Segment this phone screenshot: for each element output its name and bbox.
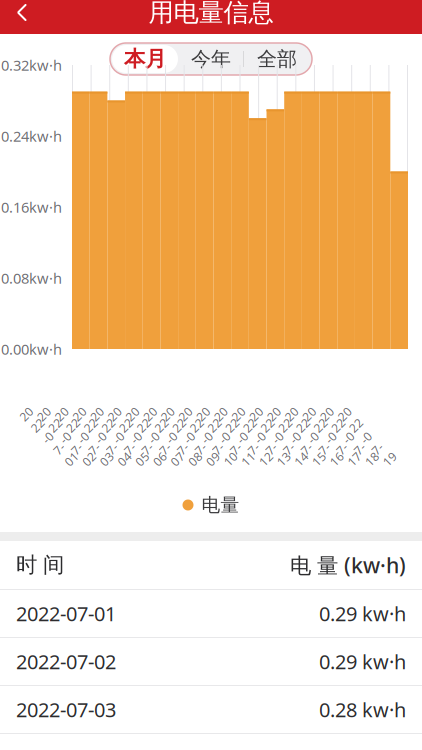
button[interactable]: 返回 xyxy=(0,0,44,34)
staticText: 2022-07-15 xyxy=(289,397,303,476)
staticText: 2022-07-01 xyxy=(42,397,56,476)
staticText: 2022-07-01 xyxy=(16,600,116,627)
staticText: 2022-07-17 xyxy=(325,397,339,476)
staticText: 2022-07-19 xyxy=(360,397,374,476)
staticText: 2022-07-18 xyxy=(342,397,356,476)
staticText: 0.08kw·h xyxy=(1,268,62,288)
staticText: 0.24kw·h xyxy=(1,126,62,146)
staticText: 2022-07-12 xyxy=(236,397,250,476)
staticText: 用电量信息 xyxy=(148,0,273,28)
staticText: 2022-07-07 xyxy=(148,397,162,476)
staticText: 全部 xyxy=(257,47,297,71)
staticText: 本月 xyxy=(124,46,166,72)
staticText: 2022-07-13 xyxy=(254,397,268,476)
staticText: 今年 xyxy=(191,47,231,71)
staticText: 0.29 kw·h xyxy=(319,648,406,675)
staticText: 2022-07-16 xyxy=(307,397,321,476)
staticText: 2022-07-08 xyxy=(166,397,180,476)
button[interactable]: 2022-07-03 xyxy=(0,686,422,733)
staticText: 0.28 kw·h xyxy=(319,696,406,723)
staticText: 电量 xyxy=(201,493,239,516)
staticText: 0.32kw·h xyxy=(1,55,62,75)
staticText: 2022-07-06 xyxy=(130,397,144,476)
button[interactable]: 全部 xyxy=(244,45,310,73)
staticText: 2022-07-03 xyxy=(16,696,116,723)
button[interactable]: 2022-07-02 xyxy=(0,638,422,685)
button[interactable]: 2022-07-01 xyxy=(0,590,422,637)
button[interactable]: 本月 xyxy=(112,45,178,73)
button[interactable]: 今年 xyxy=(178,45,244,73)
staticText: 2022-07-14 xyxy=(272,397,286,476)
staticText: 2022-07-11 xyxy=(219,397,233,476)
staticText: 时 间 xyxy=(16,552,64,578)
staticText: 0.16kw·h xyxy=(1,197,62,217)
staticText: 2022-07-03 xyxy=(77,397,91,476)
staticText: 0.00kw·h xyxy=(1,339,62,359)
staticText: 2022-07-10 xyxy=(201,397,215,476)
staticText: 2022-07-04 xyxy=(95,397,109,476)
staticText: 2022-07-09 xyxy=(183,397,197,476)
staticText: 电 量 (kw·h) xyxy=(290,551,406,579)
staticText: 0.29 kw·h xyxy=(319,600,406,627)
staticText: 2022-07-02 xyxy=(16,648,116,675)
staticText: 2022-07-05 xyxy=(113,397,127,476)
staticText: 2022-07-02 xyxy=(59,397,73,476)
